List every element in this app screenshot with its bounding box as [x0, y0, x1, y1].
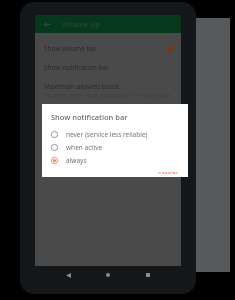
staticText: Show notification bar	[51, 112, 128, 122]
staticText: Privacy policy	[44, 108, 86, 117]
staticText: Show notification bar	[44, 63, 109, 72]
button[interactable]: Privacy policy	[35, 103, 181, 122]
button[interactable]: Navigate up	[40, 17, 54, 31]
button[interactable]: always	[42, 154, 188, 167]
button[interactable]: Show volume bar	[35, 39, 181, 58]
button[interactable]: Recent apps	[141, 268, 155, 282]
button[interactable]: never (service less reliable)	[42, 128, 188, 141]
staticText: CANCEL	[158, 170, 179, 174]
staticText: never (service less reliable)	[66, 130, 148, 139]
staticText: always	[66, 156, 87, 165]
button[interactable]: CANCEL	[149, 167, 188, 177]
staticText: Show volume bar	[44, 44, 97, 53]
staticText: when active	[66, 143, 103, 152]
button[interactable]: Back	[61, 268, 75, 282]
staticText: Volume Up	[61, 19, 101, 29]
button[interactable]: Show notification bar	[35, 58, 181, 77]
button[interactable]: when active	[42, 141, 188, 154]
button[interactable]: Maximum allowed boost	[35, 77, 181, 103]
button[interactable]: Home	[101, 268, 115, 282]
staticText: Maximum allowed boost	[44, 82, 120, 91]
